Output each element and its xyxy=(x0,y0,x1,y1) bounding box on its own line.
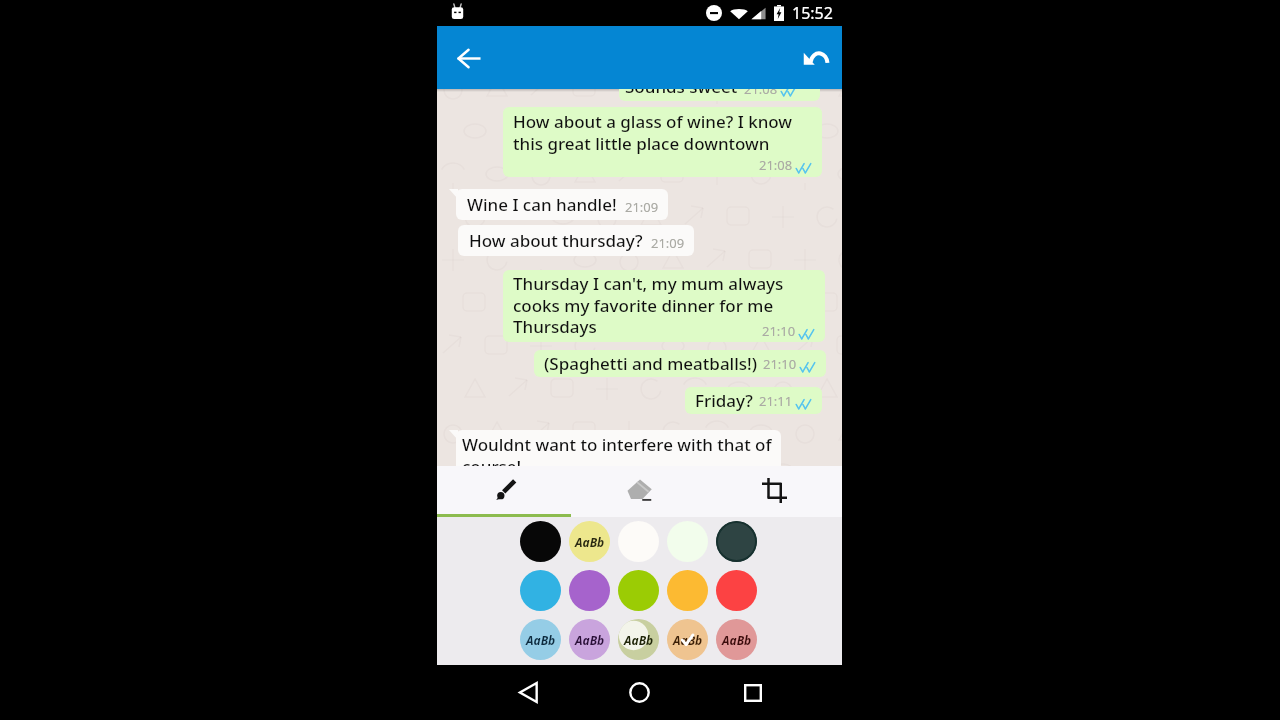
button[interactable]: How about thursday? xyxy=(458,225,694,256)
button[interactable] xyxy=(569,570,610,611)
button[interactable] xyxy=(667,570,708,611)
staticText: How about a glass of wine? I know this g… xyxy=(513,110,793,155)
staticText: Sounds sweet xyxy=(625,89,738,98)
staticText: AaBb xyxy=(673,632,703,648)
button[interactable]: AaBb xyxy=(520,619,561,660)
button[interactable] xyxy=(618,570,659,611)
staticText: Thursday I can't, my mum always cooks my… xyxy=(513,272,784,338)
staticText: 21:10 xyxy=(763,355,797,373)
staticText: Wouldnt want to interfere with that of c… xyxy=(462,433,772,466)
button[interactable]: AaBb xyxy=(618,619,659,660)
staticText: 21:08 xyxy=(759,156,793,174)
staticText: AaBb xyxy=(575,534,605,550)
staticText: (Spaghetti and meatballs!) xyxy=(544,352,757,375)
button[interactable]: AaBb xyxy=(667,619,708,660)
staticText: AaBb xyxy=(526,632,556,648)
button[interactable]: Undo xyxy=(791,34,839,82)
staticText: Friday? xyxy=(695,389,753,412)
staticText: 15:52 xyxy=(792,2,833,24)
button[interactable]: How about a glass of wine? I know this g… xyxy=(503,107,822,177)
button[interactable]: AaBb xyxy=(569,619,610,660)
button[interactable]: Back xyxy=(445,34,493,82)
staticText: 21:10 xyxy=(762,322,796,340)
button[interactable] xyxy=(618,521,659,562)
button[interactable]: (Spaghetti and meatballs!) xyxy=(534,350,826,377)
staticText: 21:11 xyxy=(759,392,793,410)
staticText: Wine I can handle! xyxy=(467,193,617,216)
staticText: AaBb xyxy=(575,632,605,648)
button[interactable] xyxy=(619,89,820,101)
button[interactable]: Friday? xyxy=(685,387,822,414)
staticText: 21:08 xyxy=(744,89,778,98)
button[interactable] xyxy=(520,570,561,611)
button[interactable]: Recents xyxy=(685,665,820,720)
button[interactable]: Eraser xyxy=(572,466,707,514)
button[interactable]: Wouldnt want to interfere with that of c… xyxy=(456,430,781,466)
button[interactable]: Thursday I can't, my mum always cooks my… xyxy=(503,270,825,342)
button[interactable]: Home xyxy=(572,665,707,720)
button[interactable]: Brush xyxy=(437,466,572,514)
button[interactable] xyxy=(716,570,757,611)
button[interactable]: Wine I can handle! xyxy=(456,189,668,220)
staticText: 21:09 xyxy=(625,198,659,216)
button[interactable] xyxy=(667,521,708,562)
button[interactable] xyxy=(716,521,757,562)
button[interactable]: AaBb xyxy=(716,619,757,660)
button[interactable]: AaBb xyxy=(569,521,610,562)
button[interactable]: Back xyxy=(461,665,596,720)
staticText: AaBb xyxy=(624,632,654,648)
button[interactable] xyxy=(520,521,561,562)
staticText: How about thursday? xyxy=(469,229,643,252)
staticText: AaBb xyxy=(722,632,752,648)
staticText: 21:09 xyxy=(651,234,685,252)
button[interactable]: Crop xyxy=(707,466,842,514)
